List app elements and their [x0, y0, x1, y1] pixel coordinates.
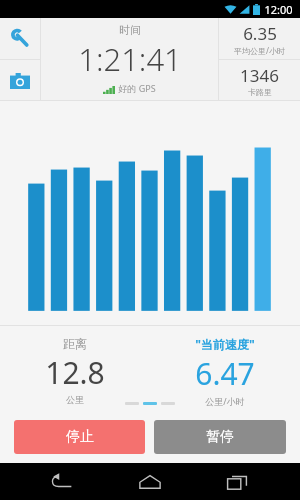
staticText: 12:00 — [264, 2, 293, 17]
button[interactable]: Home — [126, 463, 174, 500]
staticText: 12.8 — [45, 352, 105, 393]
staticText: 公里 — [66, 394, 84, 405]
button[interactable]: Back — [39, 463, 87, 500]
staticText: 平均公里/小时 — [234, 45, 285, 56]
button[interactable]: Camera — [0, 60, 40, 101]
button[interactable]: Recent apps — [213, 463, 261, 500]
button[interactable]: 停止 — [14, 420, 145, 454]
staticText: 好的 GPS — [118, 82, 156, 94]
button[interactable]: 1346 — [219, 60, 300, 101]
button[interactable]: 6.35 — [219, 18, 300, 59]
staticText: 距离 — [63, 336, 87, 351]
button[interactable]: "当前速度" — [150, 326, 300, 411]
staticText: 公里/小时 — [205, 395, 245, 407]
staticText: 1346 — [240, 64, 279, 87]
button[interactable] — [0, 101, 300, 325]
staticText: 1:21:41 — [78, 38, 182, 80]
button[interactable]: 距离 — [0, 326, 150, 411]
staticText: 卡路里 — [248, 87, 272, 97]
staticText: 时间 — [119, 23, 141, 37]
staticText: 6.47 — [195, 353, 255, 394]
button[interactable]: 暂停 — [154, 420, 286, 454]
staticText: "当前速度" — [195, 336, 255, 352]
button[interactable]: Settings — [0, 18, 40, 59]
staticText: 暂停 — [206, 428, 234, 446]
button[interactable]: 时间 — [41, 18, 218, 101]
staticText: 6.35 — [243, 22, 277, 45]
staticText: 停止 — [66, 428, 94, 446]
